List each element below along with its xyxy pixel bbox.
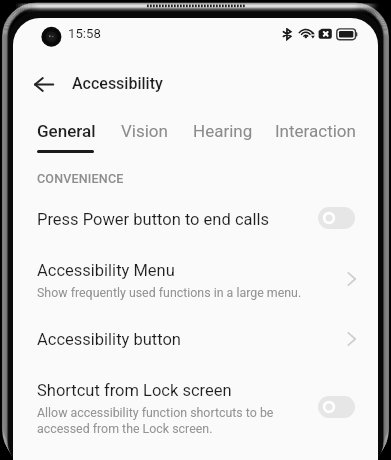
staticText: Accessibility button [37,330,181,349]
button[interactable]: Accessibility button [13,316,378,361]
button[interactable]: Vision [121,121,168,141]
button[interactable]: Hearing [193,121,253,141]
button[interactable]: General [37,121,96,141]
button[interactable]: Interaction [275,121,356,141]
button[interactable]: Press Power button to end calls [13,196,378,241]
staticText: Press Power button to end calls [37,210,270,229]
staticText: Accessibility [72,74,163,93]
staticText: General [37,121,96,141]
staticText: Vision [121,121,168,141]
staticText: CONVENIENCE [37,171,124,186]
staticText: Accessibility Menu [37,261,175,280]
button[interactable]: Shortcut from Lock screen [13,367,378,443]
staticText: Allow accessibility function shortcuts t… [37,405,274,436]
button[interactable]: Toggle [318,207,355,229]
staticText: Interaction [275,121,356,141]
staticText: Shortcut from Lock screen [37,381,232,400]
button[interactable]: Back [25,65,63,103]
button[interactable]: Toggle [318,396,355,418]
button[interactable]: Open [347,332,356,346]
button[interactable]: Accessibility Menu [13,247,378,305]
staticText: Show frequently used functions in a larg… [37,285,302,300]
staticText: Hearing [193,121,253,141]
button[interactable]: Open [347,272,356,286]
staticText: 15:58 [68,26,101,41]
